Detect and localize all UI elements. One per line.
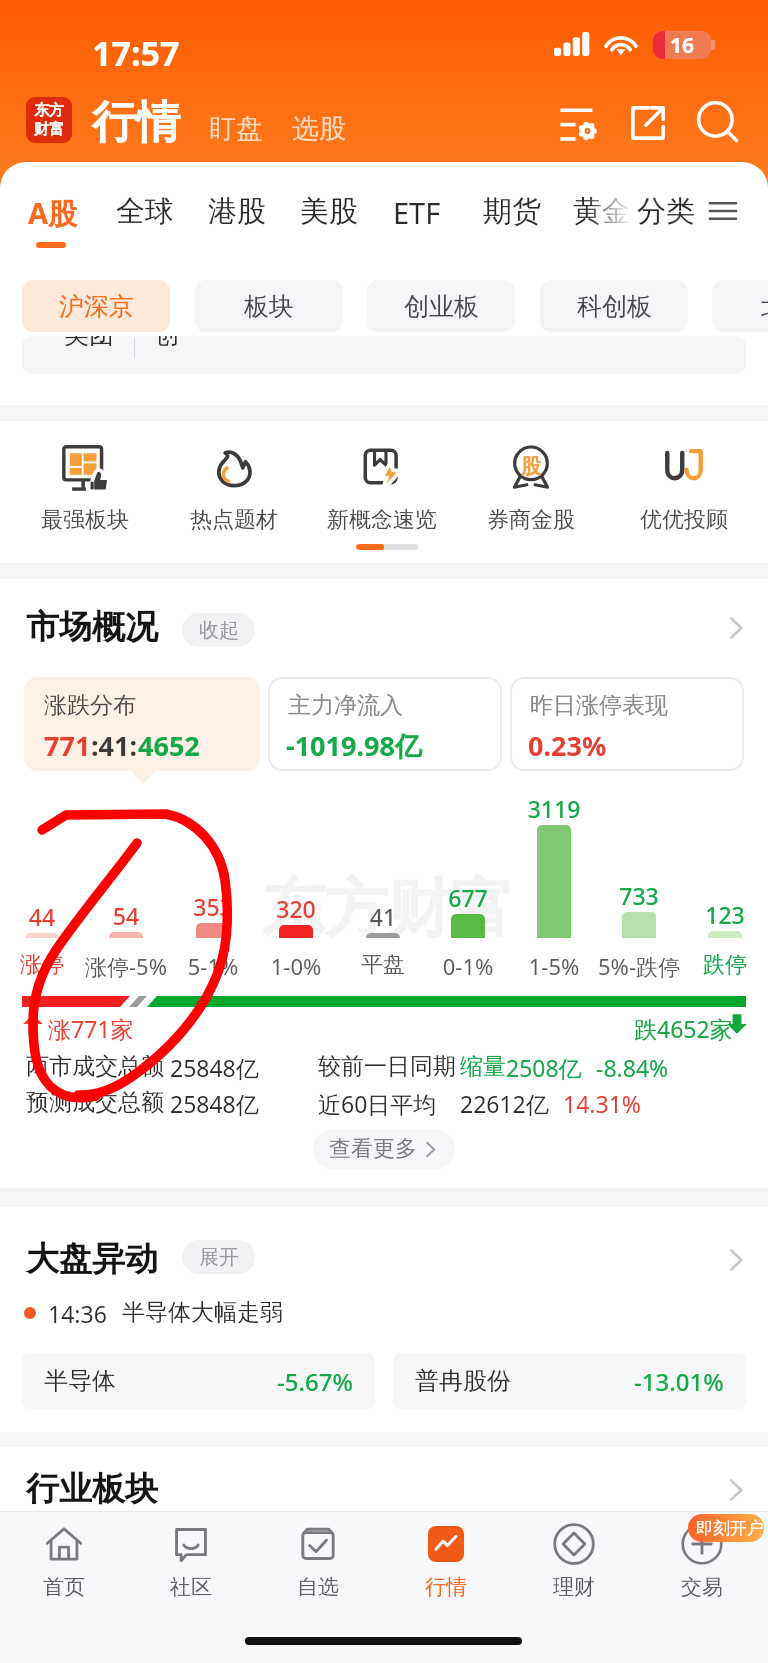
button[interactable]: 即刻开户 <box>688 1514 764 1542</box>
button[interactable]: 主力净流入 <box>268 677 502 771</box>
button[interactable]: 全球 <box>113 190 177 233</box>
staticText: 跌4652家 <box>634 1013 733 1044</box>
button[interactable]: 分类 <box>634 190 698 233</box>
staticText: 股 <box>521 454 541 479</box>
button[interactable]: 新概念速览 <box>308 432 456 544</box>
staticText: 盯盘 <box>209 112 263 146</box>
staticText: 14.31% <box>563 1088 641 1119</box>
button[interactable]: 创业板 <box>367 280 515 332</box>
staticText: 社区 <box>170 1574 212 1600</box>
staticText: 41 <box>323 901 443 932</box>
button[interactable]: 社区 <box>129 1514 253 1606</box>
staticText: 320 <box>236 893 356 924</box>
staticText: 353 <box>153 891 273 922</box>
staticText: 涨跌分布 <box>44 691 136 720</box>
button[interactable]: Share <box>624 99 672 147</box>
button[interactable]: ETF <box>390 190 444 235</box>
button[interactable]: 热点题材 <box>160 432 308 544</box>
staticText: 大盘异动 <box>26 1238 158 1280</box>
button[interactable]: 科创板 <box>540 280 688 332</box>
button[interactable]: 选股 <box>292 112 346 146</box>
staticText: 科创板 <box>577 291 652 322</box>
staticText: 1-0% <box>226 951 366 981</box>
staticText: 近60日平均 <box>318 1088 437 1119</box>
button[interactable]: 展开 <box>182 1240 255 1274</box>
staticText: 分类 <box>637 193 695 230</box>
button[interactable]: 自选 <box>256 1514 380 1606</box>
staticText: 板块 <box>244 291 294 322</box>
staticText: 热点题材 <box>190 506 278 534</box>
staticText: 查看更多 <box>329 1135 417 1163</box>
button[interactable]: 普冉股份 <box>393 1353 746 1409</box>
button[interactable]: 查看更多 <box>313 1129 455 1169</box>
staticText: 半导体大幅走弱 <box>122 1298 283 1327</box>
button[interactable]: 美股 <box>297 190 361 233</box>
staticText: 16 <box>670 31 695 59</box>
staticText: 财富 <box>34 120 64 139</box>
staticText: 创 <box>154 336 179 350</box>
staticText: 0.23% <box>528 727 607 764</box>
button[interactable]: 交易 <box>640 1514 764 1606</box>
button[interactable]: 板块 <box>195 280 343 332</box>
button[interactable]: 半导体 <box>22 1353 375 1409</box>
staticText: 市场概况 <box>26 606 158 648</box>
button[interactable]: 沪深京 <box>22 280 170 332</box>
button[interactable]: Filter settings <box>554 99 602 147</box>
staticText: 理财 <box>553 1574 595 1600</box>
button[interactable]: 北证 <box>712 280 768 332</box>
button[interactable]: 理财 <box>512 1514 636 1606</box>
staticText: -8.84% <box>596 1052 669 1083</box>
staticText: 自选 <box>297 1574 339 1600</box>
staticText: 美团 <box>64 336 114 350</box>
staticText: 涨771家 <box>48 1013 134 1044</box>
button[interactable]: Search <box>694 99 742 147</box>
staticText: -1019.98亿 <box>286 727 422 764</box>
staticText: 首页 <box>43 1574 85 1600</box>
staticText: ETF <box>393 193 441 232</box>
button[interactable] <box>18 1460 752 1512</box>
button[interactable]: 最强板块 <box>11 432 159 544</box>
button[interactable]: 收起 <box>182 613 255 647</box>
button[interactable] <box>18 598 752 658</box>
staticText: 半导体 <box>44 1366 116 1396</box>
staticText: 黄金 <box>573 193 631 230</box>
button[interactable]: 盯盘 <box>209 112 263 146</box>
staticText: 涨停-5% <box>56 951 196 981</box>
staticText: 5%-跌停 <box>569 951 709 981</box>
staticText: 771 <box>44 727 91 764</box>
staticText: 22612亿 <box>460 1088 549 1119</box>
staticText: 两市成交总额 <box>26 1052 164 1081</box>
button[interactable]: 黄金 <box>570 190 634 233</box>
button[interactable]: 优优投顾 <box>610 432 758 544</box>
button[interactable]: All categories <box>706 194 740 228</box>
staticText: :41: <box>91 727 138 764</box>
staticText: 全球 <box>116 193 174 230</box>
staticText: 4652 <box>138 727 200 764</box>
button[interactable] <box>18 1230 752 1290</box>
staticText: 54 <box>66 900 186 931</box>
button[interactable]: 港股 <box>205 190 269 233</box>
staticText: 行情 <box>425 1574 467 1600</box>
staticText: -13.01% <box>634 1365 724 1398</box>
staticText: 最强板块 <box>41 506 129 534</box>
staticText: 收起 <box>199 618 239 643</box>
staticText: 677 <box>408 882 528 913</box>
staticText: 1-5% <box>484 951 624 981</box>
staticText: 平盘 <box>313 951 453 979</box>
button[interactable]: 昨日涨停表现 <box>510 677 744 771</box>
staticText: 25848亿 <box>170 1052 259 1083</box>
button[interactable]: 涨跌分布 <box>24 677 260 771</box>
staticText: 行业板块 <box>26 1468 158 1510</box>
button[interactable]: 行情 <box>384 1514 508 1606</box>
button[interactable]: A股 <box>25 190 81 236</box>
button[interactable]: 股 <box>457 432 605 544</box>
button[interactable]: East Money home <box>26 97 72 143</box>
staticText: A股 <box>28 193 78 233</box>
staticText: 东方 <box>34 101 64 120</box>
staticText: 行情 <box>92 95 180 150</box>
staticText: 普冉股份 <box>415 1366 511 1396</box>
button[interactable]: 期货 <box>480 190 544 233</box>
button[interactable]: 首页 <box>2 1514 126 1606</box>
staticText: 北证 <box>761 291 768 322</box>
staticText: 优优投顾 <box>640 506 728 534</box>
